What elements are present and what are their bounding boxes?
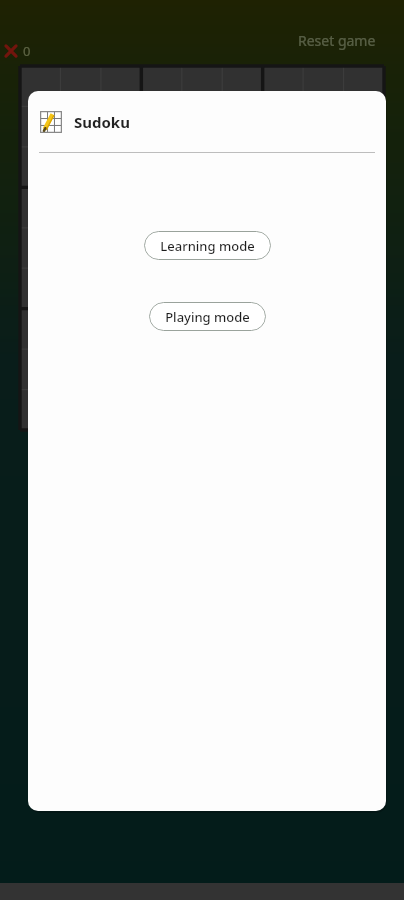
other: Sudoku xyxy=(38,109,64,135)
button[interactable]: Reset game xyxy=(292,28,382,53)
button[interactable]: Learning mode xyxy=(144,231,271,260)
staticText: Reset game xyxy=(298,31,376,50)
button[interactable]: Playing mode xyxy=(149,302,266,331)
staticText: Playing mode xyxy=(165,308,250,326)
staticText: Sudoku xyxy=(74,112,130,132)
staticText: 0 xyxy=(23,42,31,60)
staticText: Learning mode xyxy=(160,237,255,255)
